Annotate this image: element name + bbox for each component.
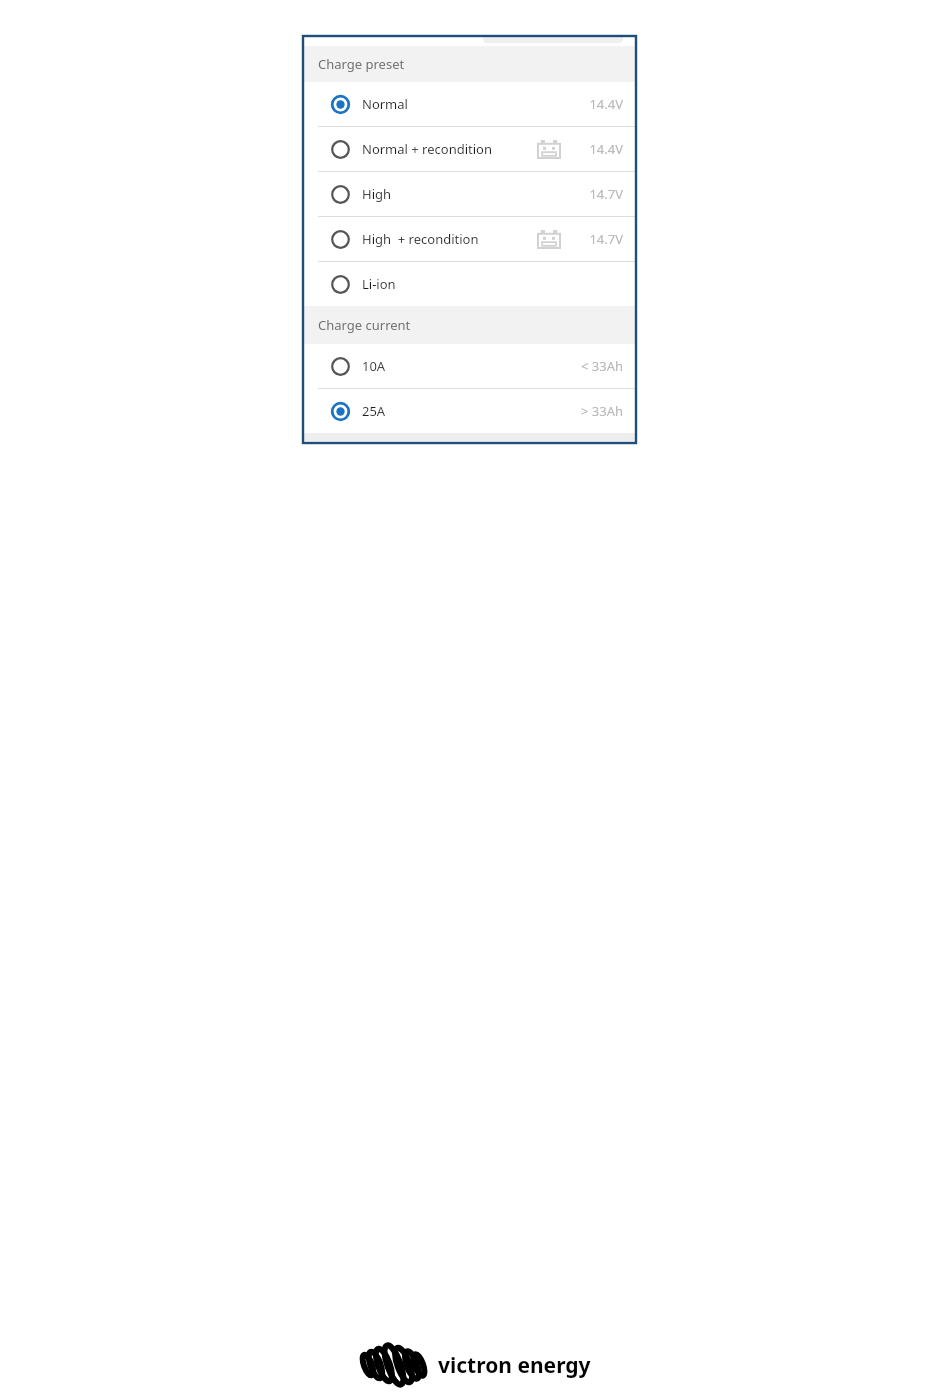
staticText: > 33Ah xyxy=(580,402,623,420)
staticText: Normal + recondition xyxy=(362,140,492,158)
staticText: Normal xyxy=(362,95,408,113)
button[interactable]: Normal + recondition xyxy=(303,127,636,171)
button[interactable]: Normal xyxy=(303,82,636,126)
staticText: Li-ion xyxy=(362,275,396,293)
other: Recondition xyxy=(537,140,561,159)
staticText: Charge preset xyxy=(318,55,405,73)
staticText: 14.7V xyxy=(589,185,623,203)
button[interactable]: 25A xyxy=(303,389,636,433)
staticText: 14.7V xyxy=(589,230,623,248)
staticText: 14.4V xyxy=(589,140,623,158)
staticText: High xyxy=(362,185,392,203)
other: Recondition xyxy=(537,230,561,249)
staticText: High + recondition xyxy=(362,230,479,248)
button[interactable]: Li-ion xyxy=(303,262,636,306)
staticText: 14.4V xyxy=(589,95,623,113)
button[interactable]: 10A xyxy=(303,344,636,388)
button[interactable]: High + recondition xyxy=(303,217,636,261)
staticText: 25A xyxy=(362,402,386,420)
staticText: < 33Ah xyxy=(580,357,623,375)
staticText: victron energy xyxy=(438,1351,591,1380)
staticText: Charge current xyxy=(318,316,411,334)
staticText: 10A xyxy=(362,357,386,375)
button[interactable]: High xyxy=(303,172,636,216)
